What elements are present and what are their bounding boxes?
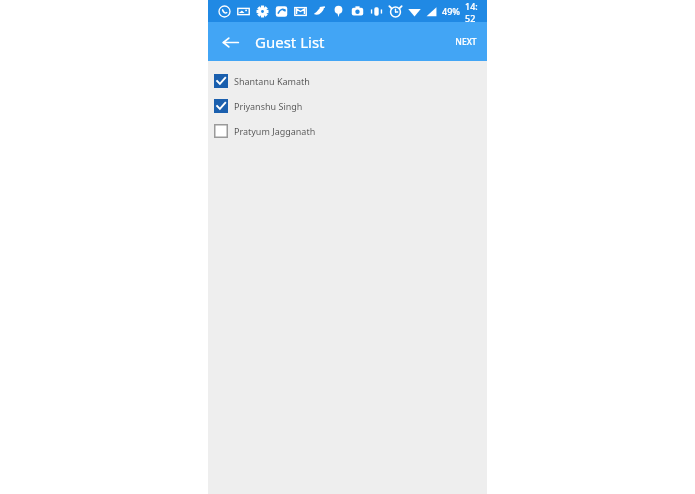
button[interactable]: Back (218, 30, 242, 54)
button[interactable]: NEXT (449, 30, 483, 54)
button[interactable]: Priyanshu Singh (208, 93, 487, 118)
staticText: Pratyum Jagganath (234, 125, 316, 137)
staticText: Shantanu Kamath (234, 75, 310, 87)
staticText: 49% (442, 5, 460, 17)
button[interactable]: Pratyum Jagganath (208, 118, 487, 143)
staticText: Guest List (255, 32, 325, 52)
staticText: Priyanshu Singh (234, 100, 303, 112)
button[interactable]: Shantanu Kamath (208, 68, 487, 93)
staticText: NEXT (455, 36, 477, 48)
staticText: 14:52 (465, 0, 481, 22)
